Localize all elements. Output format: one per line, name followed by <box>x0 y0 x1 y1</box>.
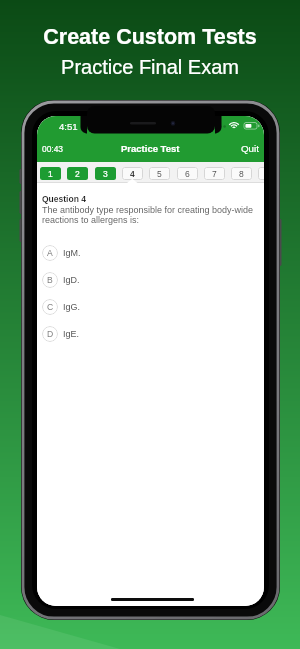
button[interactable]: 1 <box>40 167 61 180</box>
staticText: The antibody type responsible for creati… <box>42 205 257 225</box>
button[interactable]: 8 <box>231 167 252 180</box>
staticText: Question 4 <box>42 194 86 203</box>
button[interactable]: 9 <box>258 167 264 180</box>
staticText: 4:51 <box>59 121 78 132</box>
button[interactable]: 4 <box>122 167 143 180</box>
button[interactable]: A <box>40 239 256 266</box>
staticText: D <box>47 329 54 339</box>
staticText: 6 <box>185 169 190 178</box>
staticText: C <box>47 302 54 312</box>
staticText: 2 <box>75 169 80 178</box>
staticText: A <box>47 248 53 258</box>
staticText: B <box>47 275 53 285</box>
staticText: Practice Test <box>121 143 180 154</box>
button[interactable]: 6 <box>177 167 198 180</box>
staticText: 1 <box>48 169 53 178</box>
staticText: Create Custom Tests <box>43 25 257 49</box>
staticText: 5 <box>157 169 162 178</box>
staticText: 8 <box>239 169 244 178</box>
button[interactable]: 3 <box>95 167 116 180</box>
button[interactable]: 5 <box>149 167 170 180</box>
button[interactable]: D <box>40 320 256 347</box>
button[interactable]: 7 <box>204 167 225 180</box>
button[interactable]: B <box>40 266 256 293</box>
staticText: IgD. <box>63 275 80 285</box>
button[interactable]: 2 <box>67 167 88 180</box>
staticText: 4 <box>130 169 135 178</box>
staticText: IgM. <box>63 248 81 258</box>
staticText: 00:43 <box>42 144 63 153</box>
staticText: Practice Final Exam <box>61 56 239 78</box>
staticText: 3 <box>103 169 108 178</box>
button[interactable]: C <box>40 293 256 320</box>
staticText: IgG. <box>63 302 81 312</box>
staticText: Quit <box>241 143 259 154</box>
staticText: 7 <box>212 169 217 178</box>
staticText: IgE. <box>63 329 80 339</box>
button[interactable]: Quit <box>236 138 264 159</box>
